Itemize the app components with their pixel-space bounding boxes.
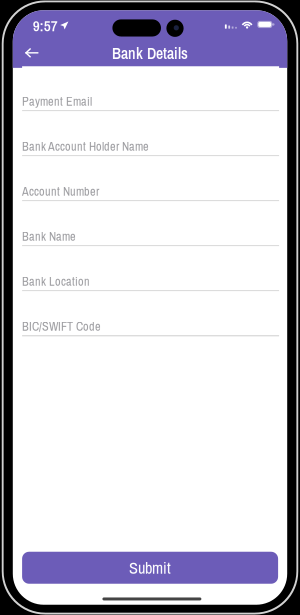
button[interactable]: Account Number	[22, 156, 279, 201]
staticText: 9:57	[33, 15, 58, 36]
button[interactable]: BIC/SWIFT Code	[22, 291, 279, 336]
staticText: Bank Name	[22, 228, 76, 244]
staticText: Bank Details	[112, 43, 188, 64]
staticText: Bank Location	[22, 273, 90, 289]
staticText: Account Number	[22, 183, 99, 199]
button[interactable]: Submit	[22, 552, 278, 584]
button[interactable]: Bank Location	[22, 246, 279, 291]
staticText: Submit	[129, 557, 171, 579]
button[interactable]: Bank Name	[22, 201, 279, 246]
button[interactable]: Bank Account Holder Name	[22, 111, 279, 156]
staticText: Bank Account Holder Name	[22, 138, 149, 154]
staticText: BIC/SWIFT Code	[22, 318, 101, 334]
button[interactable]: Back	[18, 42, 46, 64]
staticText: Payment Email	[22, 93, 92, 109]
button[interactable]: Payment Email	[22, 66, 279, 111]
